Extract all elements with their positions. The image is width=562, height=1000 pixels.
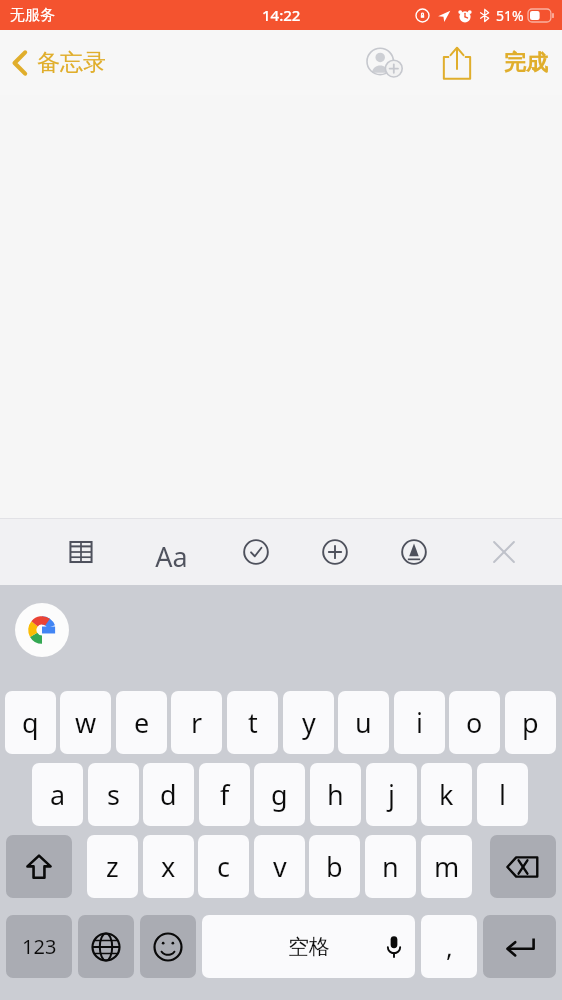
button[interactable]: m — [421, 835, 472, 898]
button[interactable]: Markup — [388, 526, 440, 578]
staticText: y — [302, 704, 316, 741]
button[interactable]: Google — [15, 603, 69, 657]
staticText: m — [434, 848, 460, 885]
staticText: t — [248, 704, 258, 741]
button[interactable]: o — [449, 691, 500, 754]
button[interactable]: Checklist — [230, 526, 282, 578]
button[interactable]: k — [421, 763, 472, 826]
button[interactable]: Change language — [78, 915, 134, 978]
button[interactable]: 123 — [6, 915, 72, 978]
button[interactable]: x — [143, 835, 194, 898]
button[interactable]: v — [254, 835, 305, 898]
staticText: b — [326, 848, 343, 885]
button[interactable]: y — [283, 691, 334, 754]
button[interactable]: a — [32, 763, 83, 826]
button[interactable]: g — [254, 763, 305, 826]
staticText: h — [327, 776, 344, 813]
button[interactable]: Add people — [358, 36, 412, 90]
button[interactable]: e — [116, 691, 167, 754]
staticText: n — [382, 848, 399, 885]
staticText: Aa — [155, 538, 188, 575]
staticText: 14:22 — [262, 5, 301, 25]
button[interactable]: Backspace — [490, 835, 556, 898]
staticText: , — [446, 930, 453, 964]
staticText: v — [273, 848, 287, 885]
staticText: 空格 — [288, 934, 330, 960]
button[interactable]: Add attachment — [309, 526, 361, 578]
button[interactable]: s — [88, 763, 139, 826]
staticText: x — [161, 848, 176, 885]
button[interactable]: b — [309, 835, 360, 898]
staticText: r — [191, 704, 203, 741]
button[interactable]: w — [60, 691, 111, 754]
button[interactable]: h — [310, 763, 361, 826]
staticText: e — [134, 704, 150, 741]
staticText: d — [160, 776, 177, 813]
staticText: l — [499, 776, 506, 813]
button[interactable]: 完成 — [490, 39, 562, 87]
button[interactable]: Shift — [6, 835, 72, 898]
button[interactable]: j — [366, 763, 417, 826]
staticText: 完成 — [504, 49, 548, 77]
button[interactable]: n — [365, 835, 416, 898]
button[interactable]: u — [338, 691, 389, 754]
button[interactable]: z — [87, 835, 138, 898]
button[interactable]: l — [477, 763, 528, 826]
staticText: a — [50, 776, 66, 813]
staticText: q — [22, 704, 39, 741]
button[interactable]: Share — [432, 38, 482, 88]
staticText: 备忘录 — [37, 48, 106, 77]
button[interactable]: 备忘录 — [0, 42, 118, 83]
button[interactable]: f — [199, 763, 250, 826]
button[interactable]: 空格 — [202, 915, 415, 978]
button[interactable]: t — [227, 691, 278, 754]
staticText: o — [466, 704, 483, 741]
button[interactable]: Format — [141, 526, 201, 586]
staticText: u — [355, 704, 372, 741]
staticText: i — [416, 704, 423, 741]
staticText: w — [75, 704, 97, 741]
button[interactable]: q — [5, 691, 56, 754]
button[interactable]: c — [198, 835, 249, 898]
staticText: 无服务 — [10, 6, 55, 25]
button[interactable]: Return — [483, 915, 556, 978]
button[interactable]: r — [171, 691, 222, 754]
staticText: k — [439, 776, 454, 813]
button[interactable]: i — [394, 691, 445, 754]
button[interactable]: p — [505, 691, 556, 754]
staticText: g — [271, 776, 288, 813]
staticText: f — [220, 776, 230, 813]
staticText: p — [522, 704, 539, 741]
staticText: c — [217, 848, 230, 885]
button[interactable]: Emoji — [140, 915, 196, 978]
button[interactable]: Close keyboard — [478, 526, 530, 578]
button[interactable]: , — [421, 915, 477, 978]
staticText: z — [106, 848, 119, 885]
staticText: 51% — [496, 6, 524, 25]
staticText: s — [107, 776, 120, 813]
button[interactable]: Table — [55, 526, 107, 578]
button[interactable]: d — [143, 763, 194, 826]
staticText: j — [388, 776, 395, 813]
staticText: 123 — [22, 933, 57, 960]
